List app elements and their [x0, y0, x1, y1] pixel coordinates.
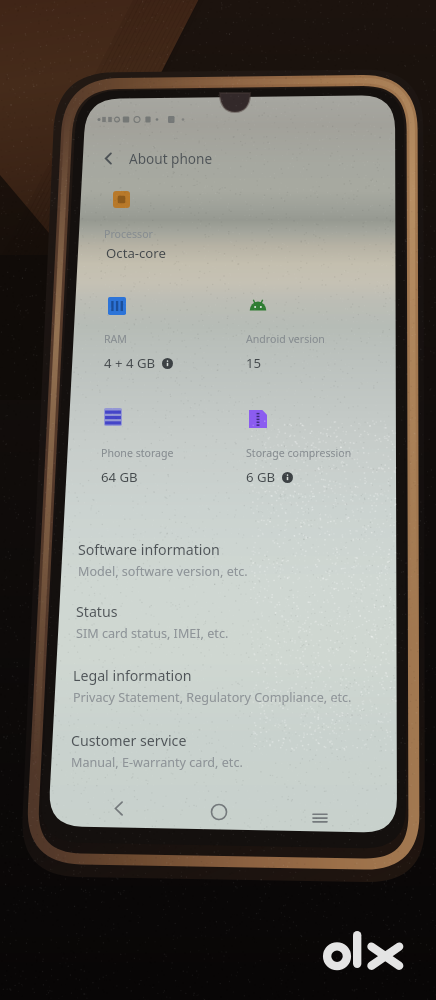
button[interactable] [218, 286, 368, 376]
button[interactable]: Software information [78, 540, 388, 590]
staticText: RAM [104, 332, 127, 346]
staticText: 15 [246, 354, 262, 372]
button[interactable] [73, 396, 223, 486]
button[interactable]: Home [204, 797, 234, 827]
button[interactable]: Recent apps [305, 803, 335, 833]
staticText: About phone [129, 149, 213, 168]
staticText: Manual, E-warranty card, etc. [71, 754, 243, 771]
staticText: Model, software version, etc. [78, 563, 248, 580]
staticText: 64 GB [101, 468, 138, 486]
staticText: Octa-core [106, 244, 166, 262]
button[interactable] [218, 398, 368, 488]
button[interactable]: Status [76, 602, 386, 652]
button[interactable] [72, 180, 392, 275]
staticText: Phone storage [101, 446, 174, 460]
staticText: Privacy Statement, Regulatory Compliance… [73, 689, 352, 706]
staticText: Android version [246, 332, 325, 346]
button[interactable]: Legal information [73, 666, 383, 716]
staticText: Storage compression [246, 446, 352, 460]
button[interactable]: Navigate up [97, 145, 272, 171]
other: OLX [324, 927, 408, 971]
button[interactable] [76, 285, 226, 375]
staticText: SIM card status, IMEI, etc. [76, 625, 229, 642]
staticText: 4 + 4 GB [104, 354, 156, 372]
staticText: Software information [78, 540, 220, 559]
button[interactable]: Back [103, 793, 133, 823]
staticText: Processor [104, 227, 153, 241]
button[interactable]: Navigate up [97, 147, 119, 169]
button[interactable]: Customer service [71, 731, 381, 781]
staticText: Customer service [71, 731, 187, 750]
staticText: 6 GB [246, 468, 276, 486]
staticText: Legal information [73, 666, 192, 685]
staticText: Status [76, 602, 118, 621]
